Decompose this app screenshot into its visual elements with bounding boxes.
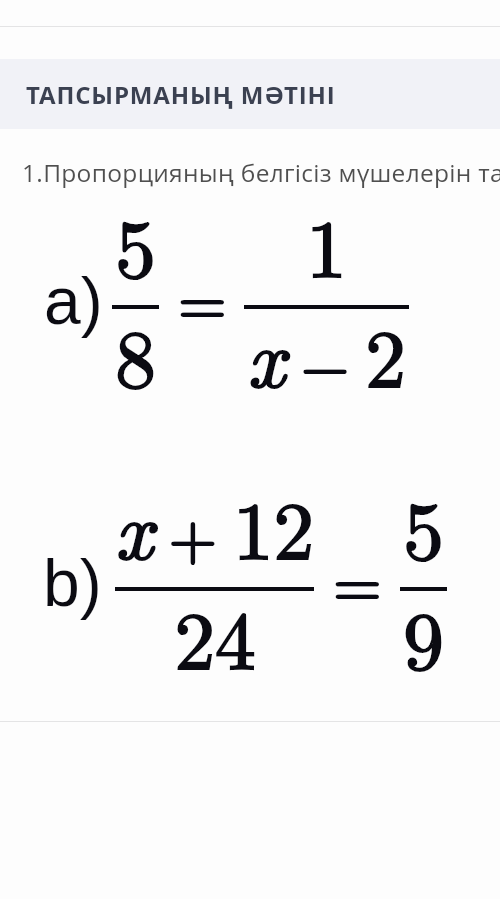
staticText: 5	[403, 468, 444, 583]
staticText: 9	[403, 578, 444, 693]
staticText: =	[154, 254, 235, 342]
staticText: 5	[115, 186, 156, 301]
staticText: x + 12	[115, 468, 314, 583]
staticText: 1	[306, 186, 347, 301]
staticText: 8	[115, 296, 156, 411]
staticText: 9	[403, 578, 444, 693]
button[interactable]: ТАПСЫРМАНЫҢ МӘТІНІ	[0, 59, 500, 129]
staticText: x − 2	[247, 296, 406, 411]
staticText: 8	[115, 296, 156, 411]
staticText: x + 12	[115, 468, 314, 583]
staticText: =	[154, 254, 235, 342]
staticText: =	[309, 536, 390, 624]
staticText: 5	[403, 468, 444, 583]
staticText: b)	[43, 546, 102, 620]
staticText: 5	[115, 186, 156, 301]
staticText: 1	[306, 186, 347, 301]
button[interactable]: Тапсырма суреті	[0, 196, 500, 721]
staticText: 24	[174, 578, 256, 693]
staticText: x − 2	[247, 296, 406, 411]
staticText: 1.Пропорцияның белгісіз мүшелерін тап	[22, 156, 500, 189]
staticText: ТАПСЫРМАНЫҢ МӘТІНІ	[26, 78, 336, 111]
staticText: =	[309, 536, 390, 624]
staticText: a)	[44, 264, 103, 338]
staticText: 24	[174, 578, 256, 693]
